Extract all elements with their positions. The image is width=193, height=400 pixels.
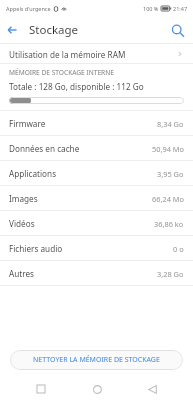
staticText: 0 o bbox=[173, 244, 184, 254]
staticText: Appels d'urgence bbox=[6, 5, 51, 12]
staticText: Fichiers audio bbox=[9, 243, 63, 254]
button[interactable]: Search bbox=[165, 18, 189, 42]
button[interactable]: Données en cache bbox=[0, 136, 193, 161]
button[interactable]: NETTOYER LA MÉMOIRE DE STOCKAGE bbox=[10, 350, 183, 370]
button[interactable]: Home bbox=[82, 378, 112, 400]
staticText: 21:47 bbox=[173, 5, 188, 12]
staticText: Totale : 128 Go, disponible : 112 Go bbox=[9, 81, 144, 92]
staticText: Vidéos bbox=[9, 218, 35, 229]
button[interactable]: Firmware bbox=[0, 111, 193, 136]
button[interactable]: Autres bbox=[0, 261, 193, 286]
button[interactable]: Utilisation de la mémoire RAM bbox=[0, 44, 193, 64]
staticText: NETTOYER LA MÉMOIRE DE STOCKAGE bbox=[33, 355, 160, 365]
button[interactable]: Back bbox=[0, 18, 24, 42]
staticText: 66,24 Mo bbox=[152, 194, 184, 204]
staticText: Firmware bbox=[9, 118, 46, 129]
button[interactable]: Applications bbox=[0, 161, 193, 186]
staticText: Images bbox=[9, 193, 38, 204]
staticText: 8,34 Go bbox=[157, 119, 184, 129]
staticText: Autres bbox=[9, 268, 35, 279]
staticText: 50,94 Mo bbox=[152, 144, 184, 154]
staticText: Données en cache bbox=[9, 143, 80, 154]
button[interactable]: Vidéos bbox=[0, 211, 193, 236]
button[interactable]: Fichiers audio bbox=[0, 236, 193, 261]
button[interactable]: Back bbox=[137, 378, 167, 400]
staticText: Stockage bbox=[29, 22, 79, 38]
button[interactable]: Recent apps bbox=[26, 378, 56, 400]
staticText: 36,86 ko bbox=[154, 219, 184, 229]
staticText: Applications bbox=[9, 168, 57, 179]
staticText: 3,95 Go bbox=[157, 169, 184, 179]
staticText: 3,28 Go bbox=[157, 269, 184, 279]
staticText: Utilisation de la mémoire RAM bbox=[9, 49, 126, 60]
button[interactable]: Images bbox=[0, 186, 193, 211]
staticText: 100 % bbox=[143, 5, 159, 12]
staticText: MÉMOIRE DE STOCKAGE INTERNE bbox=[9, 68, 114, 77]
